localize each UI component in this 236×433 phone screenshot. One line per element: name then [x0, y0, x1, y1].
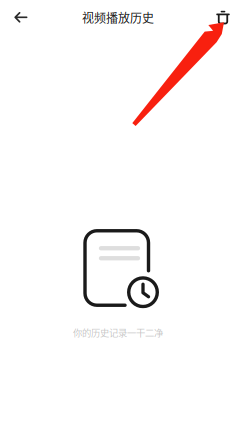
staticText: 你的历史记录一干二净 — [73, 326, 163, 339]
staticText: 视频播放历史 — [82, 9, 154, 26]
button[interactable]: Clear history — [210, 0, 236, 34]
button[interactable]: Back — [4, 0, 38, 34]
